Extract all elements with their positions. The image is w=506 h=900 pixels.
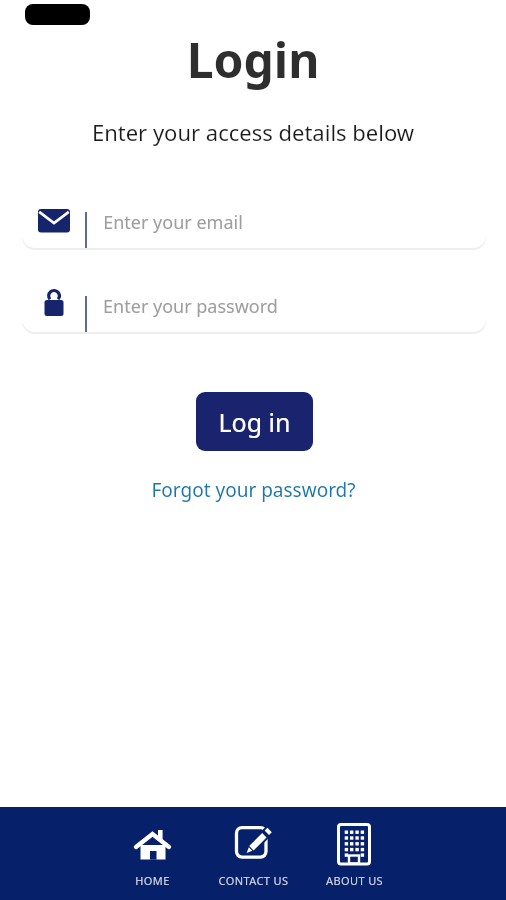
staticText: Enter your password bbox=[103, 294, 278, 319]
button[interactable]: CONTACT US bbox=[203, 807, 304, 900]
staticText: Enter your email bbox=[103, 210, 243, 235]
button[interactable]: Enter your password bbox=[22, 280, 486, 332]
staticText: Login bbox=[0, 27, 506, 92]
staticText: HOME bbox=[102, 873, 203, 888]
button[interactable]: ABOUT US bbox=[304, 807, 405, 900]
staticText: Log in bbox=[218, 405, 291, 439]
button[interactable]: Enter your email bbox=[22, 196, 486, 248]
button[interactable]: Forgot your password? bbox=[151, 477, 356, 503]
staticText: ABOUT US bbox=[304, 873, 405, 888]
staticText: CONTACT US bbox=[203, 873, 304, 888]
button[interactable]: Log in bbox=[196, 392, 313, 451]
button[interactable]: HOME bbox=[102, 807, 203, 900]
staticText: Enter your access details below bbox=[0, 117, 506, 147]
staticText: Forgot your password? bbox=[151, 477, 356, 503]
